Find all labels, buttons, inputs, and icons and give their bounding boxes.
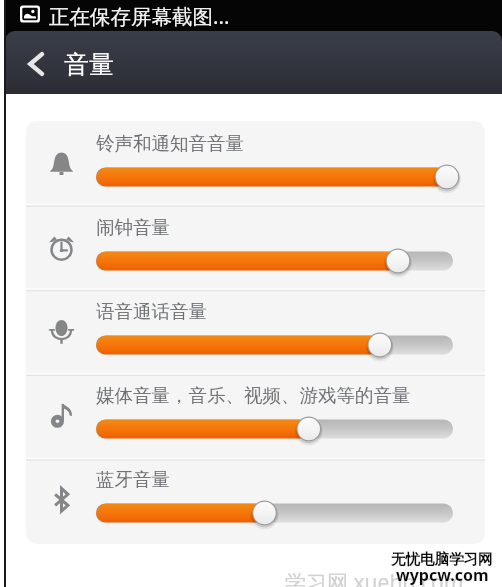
staticText: 音量 — [64, 49, 114, 80]
staticText: 铃声和通知音音量 — [96, 132, 244, 155]
button[interactable]: 铃声和通知音音量 — [26, 121, 485, 205]
staticText: wypcw.com — [396, 564, 489, 586]
staticText: 媒体音量，音乐、视频、游戏等的音量 — [96, 384, 411, 407]
staticText: 语音通话音量 — [96, 300, 207, 323]
staticText: 闹钟音量 — [96, 216, 170, 239]
staticText: 正在保存屏幕截图... — [49, 2, 230, 30]
button[interactable]: Back — [7, 34, 64, 94]
staticText: 无忧电脑学习网 — [391, 550, 493, 568]
staticText: 学习网 xuehb.com — [285, 568, 464, 587]
button[interactable]: 媒体音量，音乐、视频、游戏等的音量 — [26, 373, 485, 457]
staticText: 蓝牙音量 — [96, 468, 170, 491]
button[interactable]: 蓝牙音量 — [26, 457, 485, 541]
button[interactable]: 闹钟音量 — [26, 205, 485, 289]
button[interactable]: 语音通话音量 — [26, 289, 485, 373]
